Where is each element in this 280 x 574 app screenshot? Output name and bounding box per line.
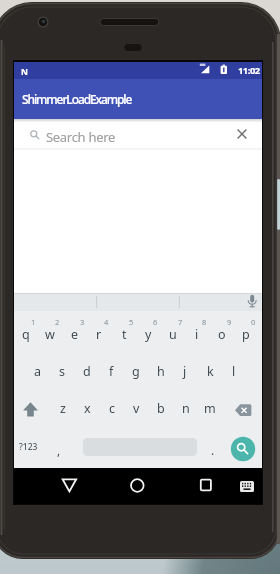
staticText: u: [169, 326, 177, 343]
button[interactable]: [191, 472, 221, 500]
button[interactable]: b: [149, 390, 173, 426]
button[interactable]: [14, 119, 262, 150]
staticText: t: [122, 326, 127, 343]
button[interactable]: e: [63, 316, 87, 352]
button[interactable]: t: [112, 316, 136, 352]
button[interactable]: [236, 474, 258, 498]
button[interactable]: [230, 436, 256, 462]
button[interactable]: a: [26, 353, 50, 389]
staticText: 7: [178, 317, 183, 326]
staticText: m: [204, 400, 216, 417]
staticText: s: [59, 363, 65, 380]
button[interactable]: [16, 394, 46, 422]
button[interactable]: [242, 293, 262, 311]
button[interactable]: [228, 394, 258, 422]
button[interactable]: h: [149, 353, 173, 389]
button[interactable]: [232, 124, 252, 144]
staticText: 11:02: [238, 64, 260, 76]
staticText: N: [21, 66, 28, 75]
button[interactable]: z: [51, 390, 75, 426]
button[interactable]: v: [124, 390, 148, 426]
staticText: r: [96, 326, 102, 343]
button[interactable]: k: [198, 353, 222, 389]
staticText: b: [157, 400, 165, 417]
staticText: 5: [129, 317, 134, 326]
staticText: o: [218, 326, 226, 343]
button[interactable]: s: [50, 353, 74, 389]
staticText: 0: [251, 317, 256, 326]
staticText: c: [109, 400, 116, 417]
staticText: 4: [104, 317, 109, 326]
staticText: 6: [153, 317, 158, 326]
staticText: h: [157, 363, 165, 380]
staticText: 8: [202, 317, 207, 326]
staticText: 2: [55, 317, 60, 326]
button[interactable]: f: [99, 353, 123, 389]
staticText: e: [71, 326, 79, 343]
staticText: a: [34, 363, 42, 380]
staticText: l: [232, 363, 236, 380]
button[interactable]: [16, 436, 44, 462]
staticText: i: [195, 326, 199, 343]
staticText: .: [211, 442, 215, 457]
button[interactable]: g: [124, 353, 148, 389]
staticText: Search here: [46, 128, 116, 143]
button[interactable]: r: [87, 316, 111, 352]
button[interactable]: c: [100, 390, 124, 426]
staticText: v: [133, 400, 140, 417]
staticText: p: [242, 326, 250, 343]
button[interactable]: l: [222, 353, 246, 389]
staticText: z: [60, 400, 66, 417]
button[interactable]: y: [136, 316, 160, 352]
button[interactable]: j: [173, 353, 197, 389]
button[interactable]: d: [75, 353, 99, 389]
staticText: q: [22, 326, 30, 343]
button[interactable]: q: [14, 316, 38, 352]
staticText: ?123: [19, 441, 38, 453]
staticText: ShimmerLoadExample: [22, 91, 132, 107]
staticText: k: [207, 363, 214, 380]
button[interactable]: p: [234, 316, 258, 352]
staticText: ,: [57, 442, 61, 457]
staticText: x: [84, 400, 91, 417]
staticText: d: [83, 363, 91, 380]
staticText: 3: [80, 317, 85, 326]
staticText: j: [183, 363, 187, 380]
button[interactable]: w: [38, 316, 62, 352]
staticText: g: [132, 363, 140, 380]
staticText: f: [109, 363, 114, 380]
button[interactable]: m: [198, 390, 222, 426]
button[interactable]: [123, 472, 153, 500]
button[interactable]: u: [161, 316, 185, 352]
button[interactable]: [55, 472, 85, 500]
staticText: 1: [31, 317, 36, 326]
button[interactable]: i: [185, 316, 209, 352]
button[interactable]: o: [210, 316, 234, 352]
button[interactable]: x: [75, 390, 99, 426]
staticText: y: [145, 326, 152, 343]
button[interactable]: n: [174, 390, 198, 426]
staticText: 9: [227, 317, 232, 326]
staticText: n: [182, 400, 190, 417]
staticText: w: [45, 326, 55, 343]
